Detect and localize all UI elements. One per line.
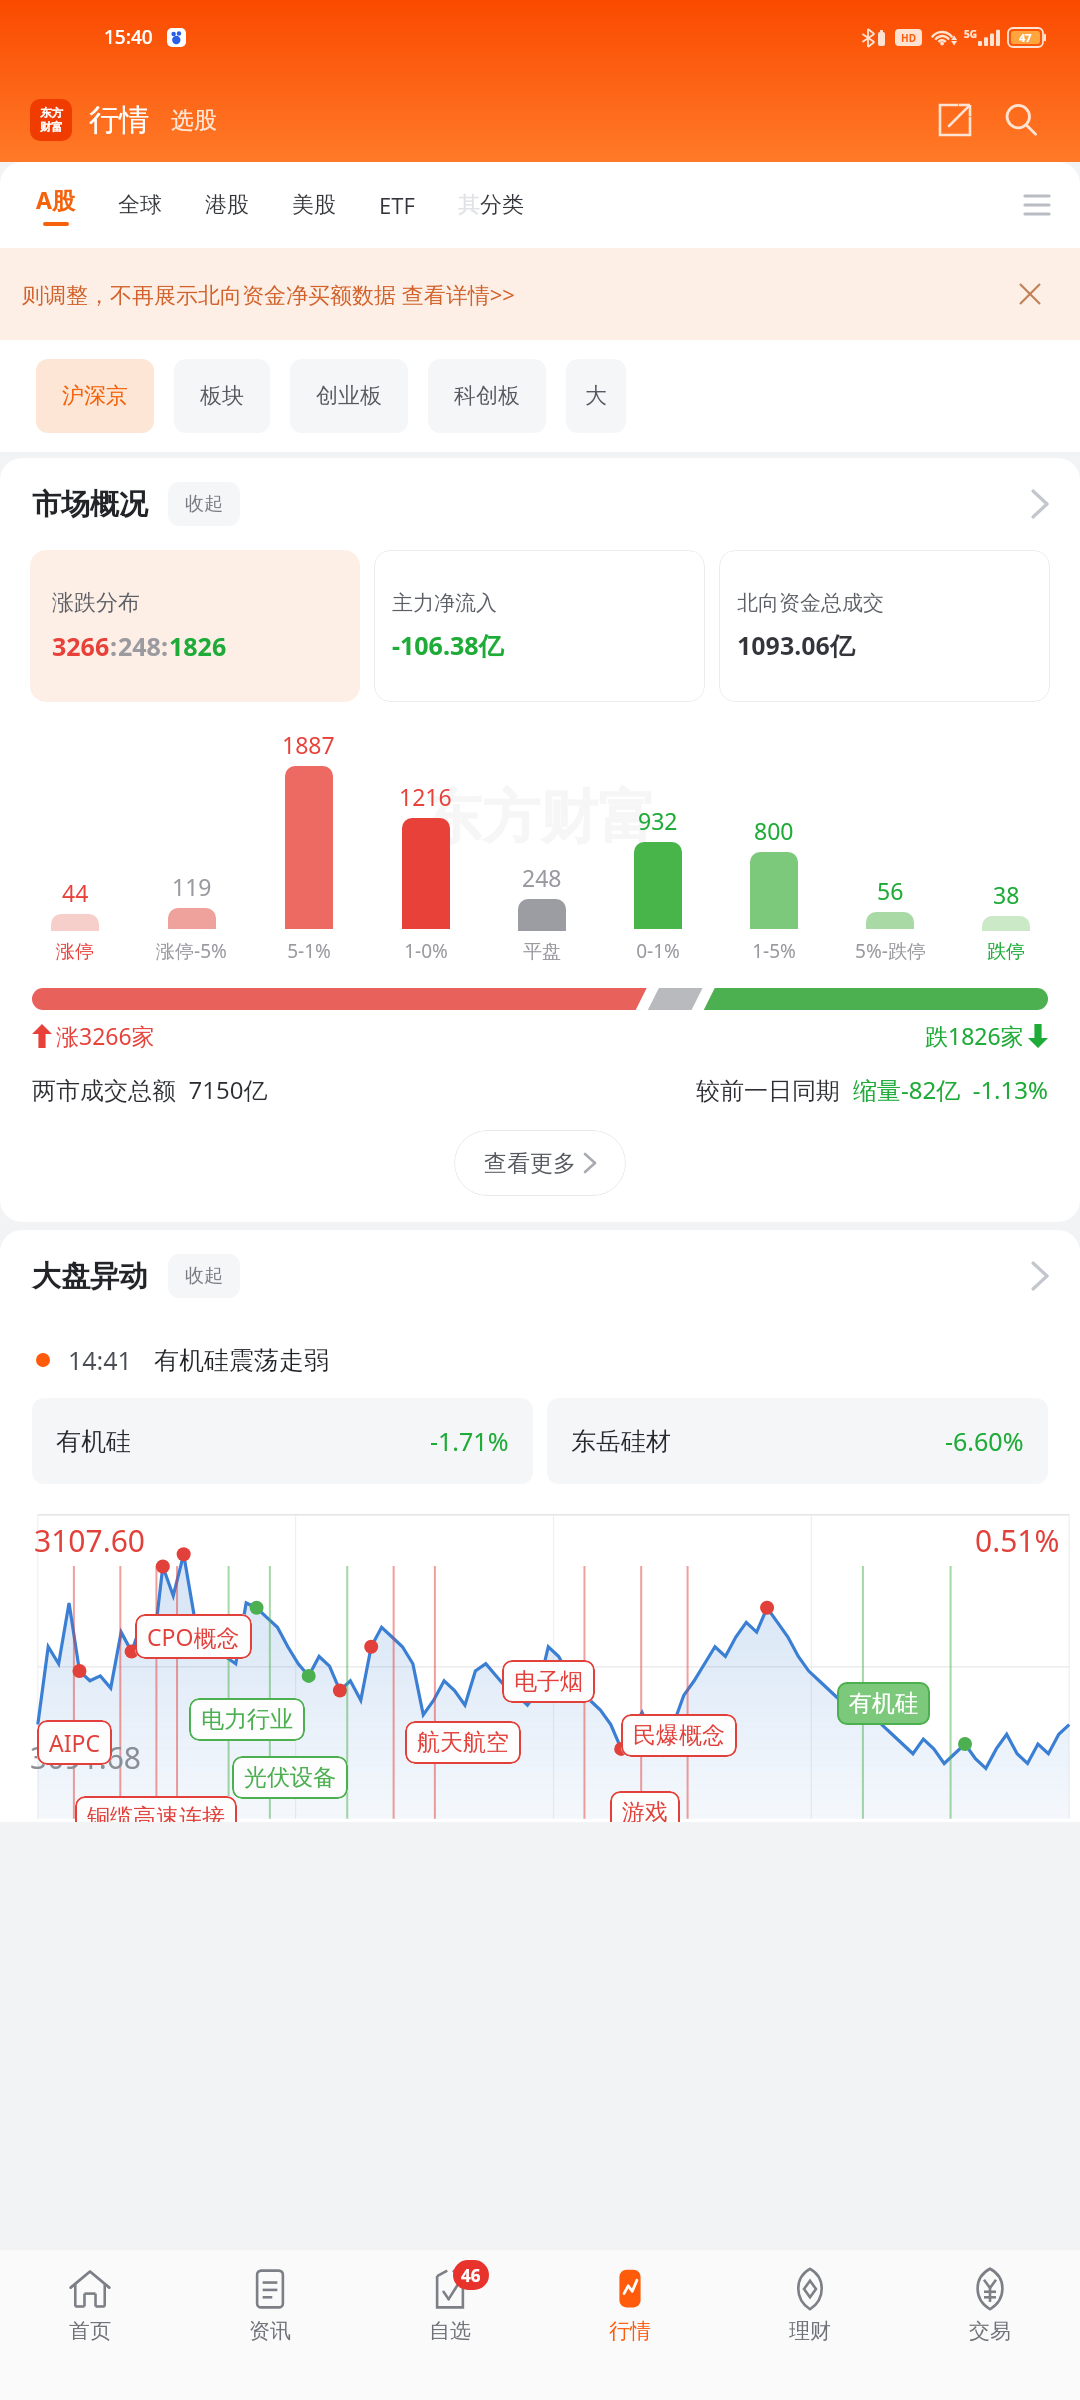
staticText: 跌1826家 [925, 1020, 1024, 1051]
staticText: 1-5% [752, 938, 796, 964]
staticText: : [161, 629, 169, 663]
staticText: 自选 [429, 2318, 471, 2344]
staticText: 1-0% [404, 938, 448, 964]
staticText: 248 [522, 862, 562, 893]
button[interactable]: 119 [133, 729, 250, 964]
staticText: 有机硅 [56, 1426, 131, 1457]
staticText: 1093.06亿 [737, 628, 855, 662]
staticText: 其 [458, 191, 480, 219]
staticText: : [110, 629, 118, 663]
button[interactable]: 932 [600, 729, 716, 964]
staticText: 主力净流入 [392, 590, 497, 616]
button[interactable]: 北向资金总成交 [719, 550, 1050, 702]
button[interactable]: 港股 [205, 183, 249, 227]
staticText: AIPC [49, 1727, 100, 1758]
staticText: -1.71% [430, 1424, 509, 1458]
staticText: 5-1% [287, 938, 331, 964]
button[interactable]: 800 [716, 729, 832, 964]
staticText: 932 [638, 805, 678, 836]
staticText: 涨跌分布 [52, 589, 140, 617]
button[interactable]: Search [992, 91, 1050, 149]
staticText: A股 [36, 184, 75, 215]
button[interactable]: Share [928, 93, 982, 147]
staticText: 大盘异动 [32, 1258, 148, 1295]
button[interactable]: 56 [832, 729, 948, 964]
button[interactable]: 大 [566, 359, 626, 433]
button[interactable]: 美股 [292, 183, 336, 227]
staticText: 铜缆高速连接 [87, 1803, 225, 1822]
button[interactable]: A股 [36, 184, 75, 226]
button[interactable]: 248 [484, 731, 600, 964]
staticText: 板块 [200, 382, 244, 410]
staticText: 56 [877, 875, 904, 906]
button[interactable]: 首页 [0, 2250, 180, 2400]
button[interactable]: 1216 [367, 729, 484, 964]
staticText: 0.51% [975, 1520, 1060, 1561]
button[interactable]: 航天航空 [405, 1721, 521, 1764]
button[interactable]: 铜缆高速连接 [75, 1796, 237, 1822]
button[interactable]: ETF [379, 182, 415, 228]
button[interactable]: 大盘异动 [0, 1230, 1080, 1322]
staticText: 248 [118, 629, 161, 663]
button[interactable]: AIPC [37, 1720, 112, 1765]
staticText: CPO概念 [147, 1621, 240, 1652]
button[interactable]: 电力行业 [189, 1698, 305, 1741]
staticText: 5G [964, 27, 977, 41]
staticText: 交易 [969, 2318, 1011, 2344]
staticText: 38 [993, 879, 1020, 910]
button[interactable]: 查看更多 [454, 1130, 626, 1196]
staticText: 东方财富 [424, 781, 656, 854]
button[interactable]: 电子烟 [502, 1660, 595, 1703]
button[interactable]: 创业板 [290, 359, 408, 433]
button[interactable]: 光伏设备 [232, 1756, 348, 1799]
button[interactable]: 44 [16, 731, 133, 964]
staticText: 两市成交总额 7150亿 [32, 1073, 268, 1106]
staticText: 科创板 [454, 382, 520, 410]
button[interactable]: 民爆概念 [621, 1714, 737, 1757]
button[interactable]: 沪深京 [36, 359, 154, 433]
staticText: 电子烟 [514, 1667, 583, 1696]
button[interactable]: 有机硅 [32, 1398, 533, 1484]
button[interactable]: 全球 [118, 183, 162, 227]
staticText: 北向资金总成交 [737, 590, 884, 616]
staticText: 1887 [282, 729, 335, 760]
button[interactable]: 东岳硅材 [547, 1398, 1048, 1484]
button[interactable]: 行情 [540, 2250, 720, 2400]
button[interactable]: CPO概念 [135, 1614, 252, 1659]
button[interactable]: 交易 [900, 2250, 1080, 2400]
staticText: 游戏 [622, 1798, 668, 1822]
staticText: 3266 [52, 629, 110, 663]
staticText: 收起 [185, 492, 223, 516]
staticText: 资讯 [249, 2318, 291, 2344]
staticText: 涨停 [56, 940, 94, 964]
button[interactable]: Close [1008, 272, 1052, 316]
staticText: 涨3266家 [56, 1020, 155, 1051]
staticText: HD [901, 31, 916, 45]
button[interactable]: More tabs [1014, 182, 1060, 228]
button[interactable]: 38 [948, 731, 1064, 964]
staticText: 14:41 [68, 1343, 132, 1377]
button[interactable]: 主力净流入 [374, 550, 705, 702]
button[interactable]: 资讯 [180, 2250, 360, 2400]
button[interactable]: 板块 [174, 359, 270, 433]
staticText: 平盘 [523, 940, 561, 964]
button[interactable]: 市场概况 [0, 458, 1080, 550]
staticText: 航天航空 [417, 1728, 509, 1757]
button[interactable]: 46 [360, 2250, 540, 2400]
button[interactable]: 1887 [250, 729, 367, 964]
button[interactable]: 游戏 [610, 1791, 680, 1822]
button[interactable]: 收起 [168, 1254, 240, 1298]
staticText: 缩量-82亿 -1.13% [853, 1073, 1048, 1106]
staticText: 有机硅震荡走弱 [154, 1345, 329, 1376]
button[interactable]: 有机硅 [837, 1682, 930, 1725]
button[interactable]: 科创板 [428, 359, 546, 433]
button[interactable]: 收起 [168, 482, 240, 526]
staticText: 涨停-5% [156, 938, 227, 964]
staticText: 民爆概念 [633, 1721, 725, 1750]
staticText: 电力行业 [201, 1705, 293, 1734]
button[interactable]: 涨跌分布 [30, 550, 360, 702]
button[interactable]: 14:41 [0, 1322, 1080, 1398]
button[interactable]: 其 [458, 191, 524, 219]
button[interactable]: 理财 [720, 2250, 900, 2400]
staticText: 47 [1019, 30, 1032, 45]
